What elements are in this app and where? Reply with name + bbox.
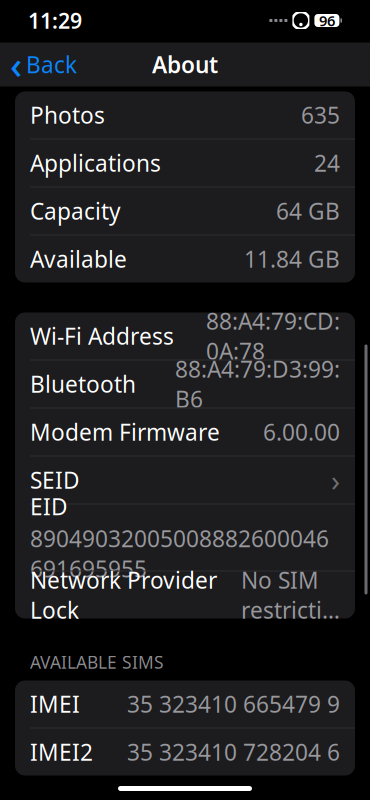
staticText: 635 [301,100,340,130]
staticText: 96 [319,11,335,30]
staticText: Modem Firmware [30,417,220,447]
staticText: 89049032005008882600046691695955 [30,523,329,584]
staticText: Bluetooth [30,369,136,399]
button[interactable]: SEID [15,456,355,503]
staticText: Applications [30,148,161,178]
button[interactable]: ‹ [0,34,77,95]
staticText: About [152,49,218,79]
staticText: 6.00.00 [263,417,340,447]
staticText: Available [30,244,127,274]
button[interactable]: Capacity [15,187,355,234]
button[interactable]: Applications [15,139,355,186]
staticText: 24 [314,148,340,178]
staticText: 35 323410 728204 6 [127,737,340,767]
staticText: EID [30,491,68,521]
staticText: ‹ [10,40,22,89]
staticText: 11.84 GB [244,244,340,274]
staticText: 11:29 [28,6,82,35]
staticText: AVAILABLE SIMS [30,650,164,673]
staticText: IMEI2 [30,737,93,767]
staticText: 88:A4:79:CD:0A:78 [206,306,340,366]
button[interactable]: Bluetooth [15,360,355,407]
button[interactable]: IMEI [15,680,355,727]
button[interactable]: IMEI2 [15,728,355,775]
staticText: IMEI [30,689,80,719]
staticText: Back [26,49,77,79]
staticText: › [331,460,340,499]
button[interactable]: Wi-Fi Address [15,312,355,359]
button[interactable]: Photos [15,91,355,138]
button[interactable]: Modem Firmware [15,408,355,455]
staticText: SEID [30,465,80,495]
staticText: Capacity [30,196,121,226]
button[interactable]: Available [15,235,355,282]
staticText: Wi-Fi Address [30,321,174,351]
staticText: 64 GB [276,196,340,226]
button[interactable]: Network Provider Lock [15,571,355,618]
button[interactable]: EID [15,504,355,570]
staticText: Network Provider Lock [30,565,217,625]
staticText: 88:A4:79:D3:99:B6 [175,354,340,414]
staticText: No SIM restricti… [241,565,340,625]
staticText: Photos [30,100,105,130]
staticText: 35 323410 665479 9 [127,689,340,719]
